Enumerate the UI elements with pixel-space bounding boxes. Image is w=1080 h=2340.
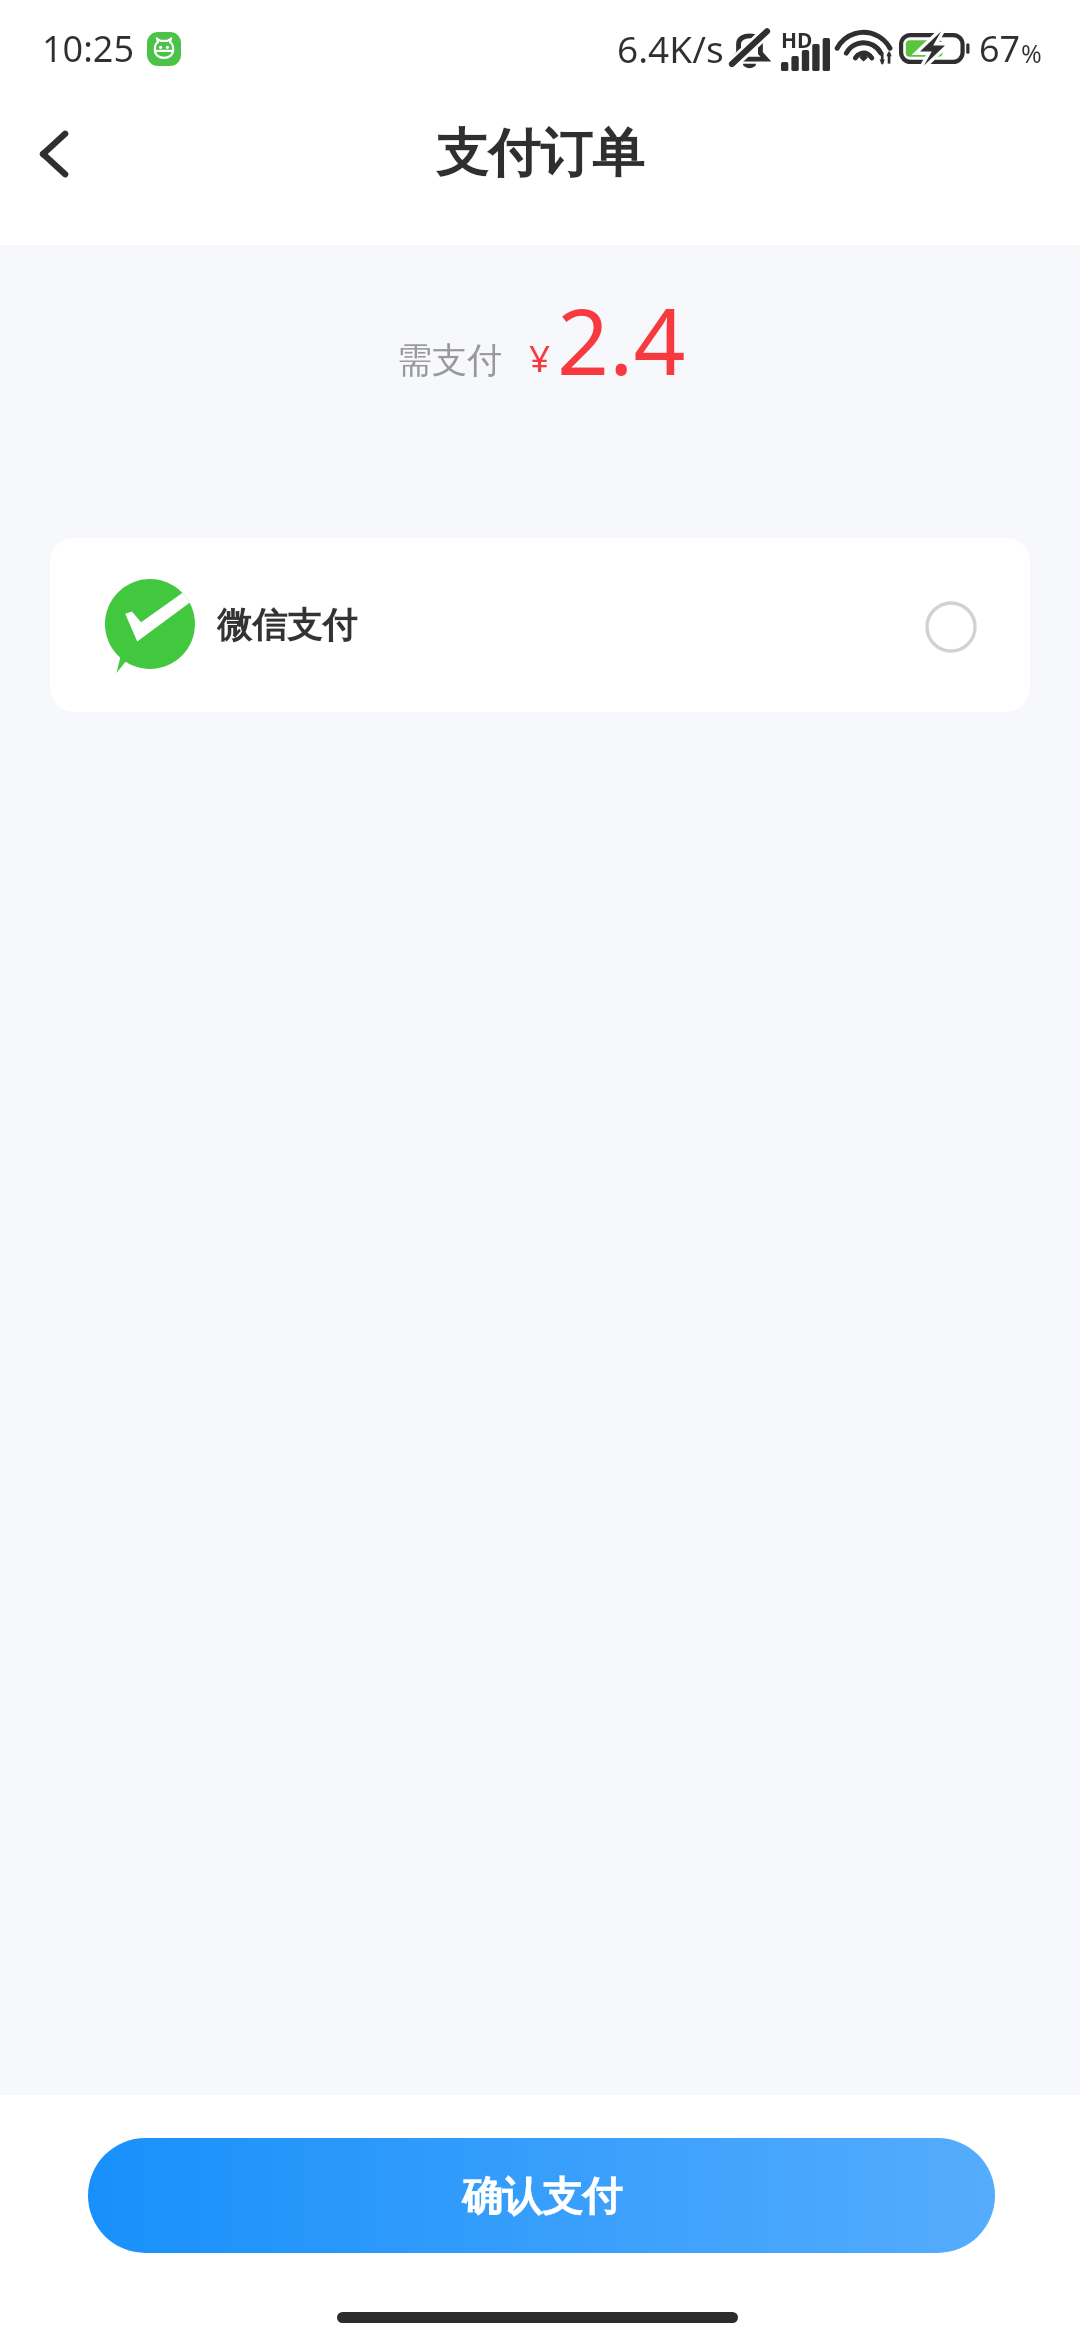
staticText: 2.4 bbox=[557, 278, 686, 398]
staticText: 微信支付 bbox=[217, 603, 357, 647]
staticText: 确认支付 bbox=[462, 2171, 622, 2221]
button[interactable]: 确认支付 bbox=[88, 2138, 995, 2253]
staticText: 需支付 bbox=[397, 338, 502, 382]
button[interactable]: 微信支付 bbox=[50, 538, 1030, 712]
staticText: 支付订单 bbox=[436, 121, 644, 187]
staticText: 67 bbox=[979, 24, 1021, 73]
staticText: 6.4K/s bbox=[617, 23, 724, 73]
staticText: ¥ bbox=[529, 332, 551, 382]
staticText: % bbox=[1021, 36, 1042, 70]
staticText: 10:25 bbox=[42, 24, 135, 73]
button[interactable]: Back bbox=[7, 106, 103, 202]
staticText: HD bbox=[781, 26, 813, 55]
